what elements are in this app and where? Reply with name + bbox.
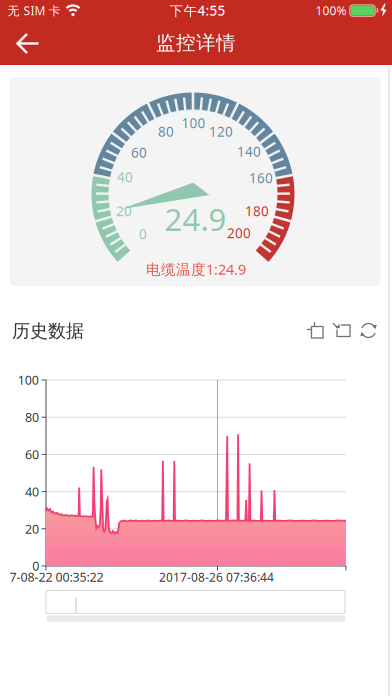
- staticText: 监控详情: [156, 31, 236, 55]
- staticText: 120: [209, 122, 233, 141]
- staticText: 80: [25, 409, 39, 426]
- staticText: 100: [181, 114, 205, 132]
- staticText: 160: [249, 169, 273, 187]
- staticText: 20: [116, 202, 132, 220]
- staticText: 电缆温度1:24.9: [146, 259, 246, 279]
- staticText: 20: [25, 520, 39, 537]
- staticText: 历史数据: [12, 320, 84, 342]
- staticText: 60: [131, 143, 147, 162]
- staticText: 180: [245, 202, 269, 220]
- staticText: 140: [237, 142, 261, 161]
- staticText: 0: [139, 225, 147, 243]
- staticText: 0: [32, 557, 39, 574]
- button[interactable]: 区域缩放: [302, 319, 328, 343]
- staticText: 24.9: [164, 198, 226, 240]
- button[interactable]: 还原: [328, 319, 355, 343]
- staticText: 无 SIM 卡: [7, 2, 60, 19]
- staticText: 60: [25, 446, 39, 463]
- staticText: 40: [25, 483, 39, 500]
- button[interactable]: 刷新: [355, 319, 381, 343]
- staticText: 200: [227, 224, 251, 242]
- staticText: 2017-08-26 07:36:44: [159, 569, 274, 585]
- staticText: 100: [18, 371, 39, 388]
- staticText: 下午4:55: [169, 1, 225, 20]
- staticText: 80: [158, 122, 174, 141]
- button[interactable]: 返回: [6, 21, 50, 65]
- staticText: 100%: [315, 2, 346, 19]
- staticText: 7-08-22 00:35:22: [9, 568, 103, 585]
- staticText: 40: [117, 168, 133, 186]
